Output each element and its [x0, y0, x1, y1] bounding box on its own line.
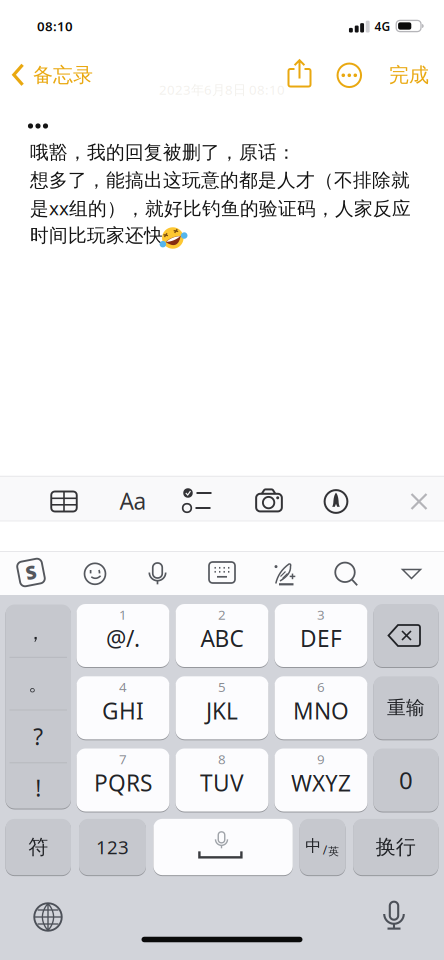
staticText: ，	[25, 620, 45, 645]
button[interactable]: 8	[175, 748, 268, 812]
staticText: 想多了，能搞出这玩意的都是人才（不排除就	[30, 169, 410, 192]
button[interactable]: ?	[5, 710, 71, 762]
button[interactable]: ，	[3, 606, 68, 658]
button[interactable]	[253, 487, 285, 514]
button[interactable]: !	[5, 762, 71, 814]
button[interactable]: 3	[274, 603, 367, 667]
button[interactable]: 中	[300, 818, 345, 876]
staticText: JKL	[206, 695, 238, 726]
staticText: 是xx组的），就好比钓鱼的验证码，人家反应	[30, 196, 411, 220]
staticText: @/.	[106, 623, 140, 653]
staticText: 中	[305, 836, 321, 856]
staticText: 7	[119, 750, 127, 768]
staticText: 9	[317, 750, 325, 768]
staticText: 符	[28, 835, 48, 859]
button[interactable]: 123	[79, 818, 146, 876]
staticText: TUV	[200, 768, 244, 798]
button[interactable]: 5	[175, 676, 268, 740]
button[interactable]: 备忘录	[8, 60, 104, 90]
button[interactable]	[332, 560, 360, 588]
button[interactable]	[334, 60, 364, 90]
staticText: 4G	[374, 18, 390, 34]
button[interactable]	[284, 56, 314, 90]
staticText: /	[323, 842, 327, 858]
button[interactable]	[206, 559, 238, 586]
button[interactable]	[406, 488, 432, 514]
button[interactable]: 9	[274, 748, 367, 812]
button[interactable]	[322, 488, 349, 515]
button[interactable]	[144, 558, 170, 588]
button[interactable]: 2	[175, 603, 268, 667]
button[interactable]	[379, 894, 409, 932]
button[interactable]	[398, 566, 424, 582]
staticText: 。	[28, 671, 48, 696]
staticText: 3	[317, 606, 325, 623]
button[interactable]: 。	[5, 657, 71, 709]
staticText: GHI	[102, 695, 144, 726]
staticText: 英	[328, 845, 339, 858]
staticText: MNO	[293, 695, 349, 726]
button[interactable]: 1	[76, 603, 169, 667]
button[interactable]: 6	[274, 676, 367, 740]
staticText: 5	[218, 678, 226, 696]
staticText: !	[35, 773, 41, 803]
button[interactable]: 7	[76, 748, 169, 812]
staticText: 8	[218, 750, 226, 768]
staticText: 时间比玩家还快	[30, 224, 163, 247]
button[interactable]	[270, 559, 300, 589]
staticText: 1	[119, 606, 127, 623]
staticText: 换行	[376, 835, 416, 859]
button[interactable]: 4	[76, 676, 169, 740]
staticText: DEF	[300, 623, 342, 653]
staticText: 2023年6月8日 08:10	[159, 81, 285, 98]
staticText: 08:10	[37, 17, 73, 35]
staticText: 完成	[389, 63, 429, 87]
staticText: 2	[218, 606, 226, 623]
staticText: 备忘录	[33, 63, 93, 87]
staticText: 重输	[387, 696, 425, 719]
staticText: 6	[317, 678, 325, 696]
button[interactable]	[48, 487, 80, 515]
button[interactable]: 完成	[378, 59, 440, 91]
staticText: 4	[119, 678, 127, 696]
button[interactable]	[181, 485, 215, 516]
staticText: Aa	[119, 486, 146, 516]
staticText: 哦豁，我的回复被删了，原话：	[30, 141, 296, 164]
staticText: WXYZ	[291, 768, 351, 798]
button[interactable]: S	[16, 557, 46, 587]
staticText: 123	[96, 835, 129, 859]
button[interactable]: 0	[373, 748, 438, 812]
button[interactable]	[81, 560, 108, 587]
button[interactable]: Aa	[111, 481, 155, 521]
button[interactable]	[373, 603, 438, 667]
button[interactable]: 换行	[353, 818, 438, 876]
staticText: ?	[33, 721, 43, 751]
button[interactable]	[153, 818, 293, 876]
staticText: 0	[399, 764, 413, 796]
button[interactable]: 重输	[373, 676, 438, 740]
staticText: PQRS	[94, 768, 152, 798]
button[interactable]: 符	[5, 818, 71, 876]
button[interactable]	[31, 900, 65, 934]
staticText: S	[25, 560, 36, 584]
staticText: ABC	[200, 623, 243, 653]
